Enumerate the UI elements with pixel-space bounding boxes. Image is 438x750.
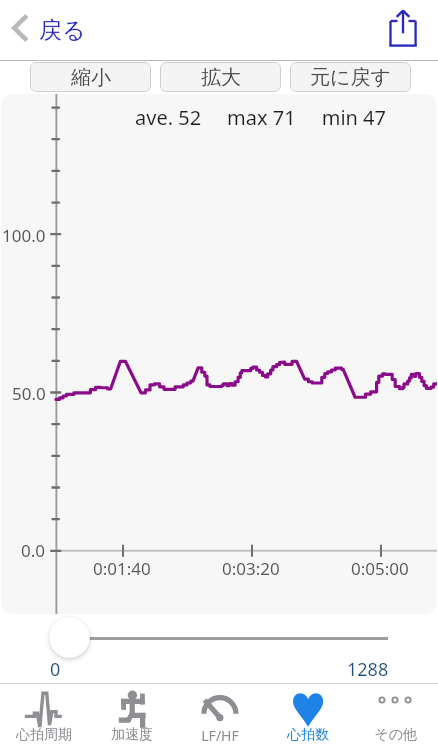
staticText: その他 [374, 726, 417, 744]
button[interactable]: 縮小 [30, 62, 151, 92]
button[interactable]: 拡大 [160, 62, 281, 92]
staticText: 0 [50, 657, 61, 682]
button[interactable]: 心拍数 [264, 684, 352, 750]
button[interactable]: LF/HF [176, 684, 264, 750]
button[interactable]: 戻る [10, 12, 86, 44]
staticText: 縮小 [71, 65, 111, 90]
staticText: 0:05:00 [351, 557, 409, 580]
staticText: 100.0 [2, 224, 46, 247]
button[interactable]: 心拍周期 [0, 684, 88, 750]
staticText: ave. 52 max 71 min 47 [135, 104, 386, 131]
staticText: 50.0 [12, 382, 46, 405]
staticText: 0:03:20 [222, 557, 280, 580]
staticText: 0.0 [21, 539, 46, 562]
staticText: LF/HF [201, 726, 239, 745]
staticText: 拡大 [201, 65, 241, 90]
staticText: 加速度 [111, 726, 153, 744]
staticText: 元に戻す [310, 65, 391, 90]
staticText: 心拍周期 [16, 726, 72, 744]
button[interactable]: 加速度 [88, 684, 176, 750]
staticText: 心拍数 [287, 726, 329, 744]
button[interactable]: Time slider [49, 617, 90, 658]
button[interactable]: Share [384, 4, 424, 52]
button[interactable]: その他 [352, 684, 438, 750]
staticText: 1288 [347, 657, 389, 682]
staticText: 戻る [39, 16, 86, 45]
button[interactable]: 元に戻す [290, 62, 411, 92]
staticText: 0:01:40 [93, 557, 151, 580]
